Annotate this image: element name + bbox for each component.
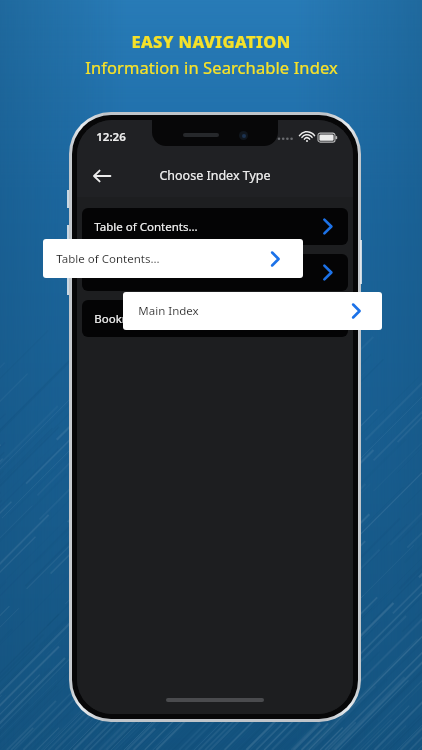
button[interactable]: Main Index	[123, 292, 382, 330]
staticText: EASY NAVIGATION	[131, 30, 291, 52]
staticText: Main Index	[138, 303, 199, 319]
button[interactable]: Bookmarks...	[82, 300, 348, 337]
staticText: Table of Contents...	[94, 219, 198, 235]
button[interactable]: Back	[81, 155, 123, 197]
staticText: Bookmarks...	[94, 311, 165, 327]
button[interactable]: Table of Contents...	[43, 239, 303, 278]
button[interactable]: Index...	[82, 254, 348, 291]
button[interactable]: Table of Contents...	[82, 208, 348, 245]
staticText: Choose Index Type	[159, 167, 271, 184]
staticText: Table of Contents...	[56, 251, 160, 267]
staticText: Index...	[94, 265, 134, 281]
staticText: 12:26	[96, 129, 126, 145]
staticText: Information in Searchable Index	[85, 56, 338, 78]
